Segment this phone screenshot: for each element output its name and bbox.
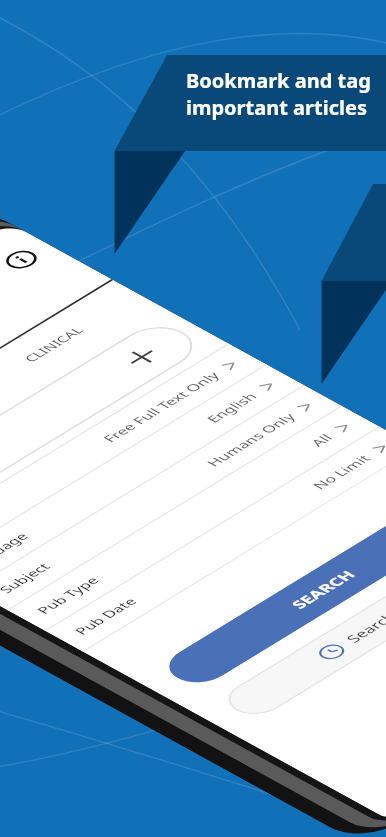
staticText: Bookmark and tag [186, 67, 371, 94]
staticText: Search history [335, 578, 386, 648]
button[interactable]: Add filter [0, 312, 228, 542]
staticText: Free Full Text Only [91, 367, 231, 447]
button[interactable]: Language [0, 359, 325, 594]
staticText: Subject [0, 558, 57, 598]
button[interactable]: Pub Date [23, 422, 386, 656]
button[interactable]: Pub Type [0, 401, 386, 635]
staticText: important articles [186, 94, 367, 121]
button[interactable]: CLINICAL [0, 274, 171, 414]
button[interactable]: Search history [198, 517, 386, 726]
button[interactable]: PubMed database [0, 255, 119, 482]
staticText: No Limit [305, 450, 378, 493]
button[interactable]: SEARCH [138, 484, 386, 695]
staticText: CLINICAL [17, 322, 91, 366]
button[interactable]: Free Full Text Only [0, 339, 287, 573]
staticText: English [199, 388, 264, 427]
button[interactable]: Information [0, 240, 50, 279]
staticText: All [305, 429, 338, 451]
staticText: SEARCH [283, 565, 364, 614]
staticText: Language [0, 528, 37, 577]
button[interactable]: Subject [0, 380, 363, 615]
button[interactable]: PUBMED [0, 376, 4, 516]
staticText: Humans Only [197, 409, 304, 471]
staticText: Pub Type [29, 572, 106, 618]
staticText: Pub Date [66, 593, 144, 639]
